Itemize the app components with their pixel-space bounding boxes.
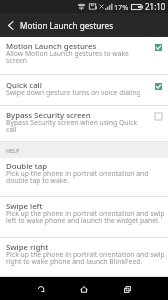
staticText: Motion Launch gestures: [6, 41, 97, 52]
staticText: Bypass Security screen: [6, 110, 91, 121]
button[interactable]: Back: [31, 279, 51, 299]
button[interactable]: Swipe right: [0, 238, 168, 277]
staticText: call: [6, 125, 17, 134]
staticText: 17%: [114, 2, 129, 12]
staticText: Allow Motion Launch gestures to wake: [6, 49, 129, 58]
staticText: HELP: [6, 147, 20, 154]
staticText: right to wake phone and launch BlinkFeed…: [6, 257, 143, 266]
button[interactable]: Swipe left: [0, 197, 168, 238]
staticText: Swipe right: [6, 242, 49, 253]
staticText: Pick up the phone in portrait orientatio…: [6, 250, 164, 259]
staticText: Quick call: [6, 80, 42, 91]
button[interactable]: Bypass Security screen: [0, 106, 168, 142]
button[interactable]: Enabled: [148, 37, 168, 57]
button[interactable]: Double tap: [0, 158, 168, 197]
staticText: Double tap: [6, 161, 48, 172]
staticText: Pick up the phone in portrait orientatio…: [6, 209, 164, 218]
button[interactable]: Home: [74, 279, 94, 299]
button[interactable]: Back: [0, 15, 20, 35]
staticText: Bypass Security screen when using Quick: [6, 118, 138, 127]
button[interactable]: Quick call: [0, 75, 168, 106]
staticText: Swipe down gesture turns on voice dialin…: [6, 88, 140, 97]
staticText: screen: [6, 56, 28, 65]
button[interactable]: Enabled: [148, 76, 168, 96]
staticText: 21:10: [145, 1, 166, 12]
staticText: left to wake phone and launch the widget…: [6, 216, 160, 225]
staticText: Swipe left: [6, 201, 43, 212]
staticText: Pick up the phone in portrait orientatio…: [6, 169, 149, 178]
staticText: double tap to wake.: [6, 176, 70, 185]
button[interactable]: Motion Launch gestures: [0, 37, 168, 75]
button[interactable]: Recent apps: [117, 279, 137, 299]
button[interactable]: Disabled: [148, 106, 168, 126]
staticText: Motion Launch gestures: [20, 20, 114, 31]
